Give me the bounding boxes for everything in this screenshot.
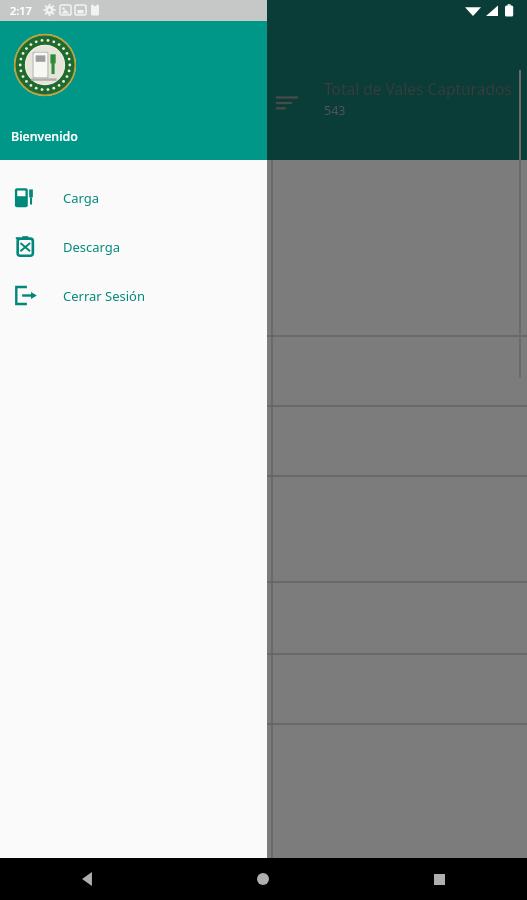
staticText: Carga	[63, 189, 100, 207]
staticText: Cerrar Sesión	[63, 287, 146, 305]
button[interactable]: Sort	[272, 78, 527, 134]
staticText: Descarga	[63, 238, 121, 256]
other: Sort	[272, 88, 302, 118]
button[interactable]: Cerrar Sesión	[0, 271, 267, 320]
button[interactable]: Back	[0, 858, 175, 900]
button[interactable]: Recent apps	[351, 858, 527, 900]
button[interactable]: Home	[175, 858, 351, 900]
staticText: Bienvenido	[11, 128, 78, 145]
staticText: Total de Vales Capturados	[324, 78, 512, 99]
staticText: 543	[324, 102, 346, 119]
button[interactable]: Descarga	[0, 222, 267, 271]
staticText: 2:17	[10, 3, 32, 18]
button[interactable]: Carga	[0, 173, 267, 222]
